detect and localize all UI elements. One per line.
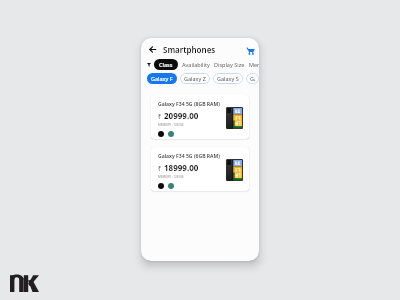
button[interactable]: Display Size <box>214 61 245 68</box>
button[interactable]: Availability <box>182 61 210 68</box>
staticText: Class <box>159 61 173 68</box>
button[interactable]: Teal colour option <box>168 183 174 189</box>
staticText: 20999.00 <box>164 110 199 121</box>
staticText: Galaxy F34 5G (8GB RAM) <box>158 101 220 108</box>
button[interactable]: Shopping cart <box>245 44 255 54</box>
staticText: MEMORY : 128 GB <box>158 175 184 179</box>
button[interactable]: Black colour option <box>158 131 164 137</box>
button[interactable]: Galaxy F34 5G (8GB RAM) <box>151 95 249 139</box>
button[interactable]: Ga <box>246 73 259 84</box>
button[interactable]: Teal colour option <box>168 131 174 137</box>
button[interactable]: Galaxy Z <box>180 73 210 84</box>
staticText: MEMORY : 128 GB <box>158 123 184 127</box>
staticText: 18999.00 <box>164 162 199 173</box>
staticText: Smartphones <box>163 44 216 55</box>
button[interactable]: Black colour option <box>158 183 164 189</box>
staticText: Galaxy Z <box>184 75 206 82</box>
button[interactable]: Galaxy S <box>213 73 243 84</box>
staticText: ₹ <box>158 165 162 173</box>
staticText: Ga <box>250 75 255 82</box>
button[interactable]: Mem <box>249 61 259 68</box>
button[interactable]: Galaxy F34 5G (6GB RAM) <box>151 147 249 191</box>
staticText: ₹ <box>158 113 162 121</box>
staticText: Galaxy S <box>217 75 239 82</box>
button[interactable]: Class <box>154 59 178 70</box>
button[interactable]: Back <box>147 44 158 55</box>
button[interactable]: Galaxy F <box>147 73 177 84</box>
staticText: Galaxy F34 5G (6GB RAM) <box>158 153 220 160</box>
staticText: Galaxy F <box>151 75 173 82</box>
